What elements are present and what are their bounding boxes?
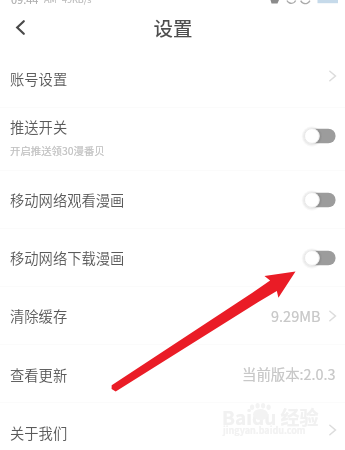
button[interactable]: 推送开关: [0, 108, 345, 171]
staticText: AM: [44, 0, 57, 6]
staticText: 查看更新: [10, 364, 68, 385]
staticText: 当前版本:2.0.3: [242, 363, 336, 384]
staticText: 移动网络下载漫画: [10, 247, 125, 268]
button[interactable]: 查看更新: [0, 345, 345, 403]
staticText: 账号设置: [10, 68, 68, 89]
staticText: 9.29MB: [271, 305, 321, 326]
staticText: 清除缓存: [10, 305, 68, 326]
staticText: 移动网络观看漫画: [10, 189, 125, 210]
button[interactable]: 移动网络下载漫画: [0, 229, 345, 287]
button[interactable]: Back: [0, 9, 40, 46]
button[interactable]: Toggle: [304, 190, 336, 210]
button[interactable]: 账号设置: [0, 50, 345, 108]
staticText: jingyan.baidu.com: [223, 424, 306, 437]
button[interactable]: 移动网络观看漫画: [0, 171, 345, 229]
button[interactable]: 关于我们: [0, 403, 345, 450]
button[interactable]: 清除缓存: [0, 287, 345, 345]
staticText: 49KB/s: [62, 0, 92, 6]
button[interactable]: Toggle: [304, 248, 336, 268]
staticText: 设置: [153, 13, 193, 41]
staticText: 09:44: [11, 0, 39, 7]
button[interactable]: Toggle: [304, 126, 336, 146]
staticText: Baidu 经验: [222, 403, 319, 431]
staticText: 推送开关: [10, 116, 68, 137]
staticText: 开启推送领30漫番贝: [10, 143, 105, 158]
staticText: 关于我们: [10, 422, 68, 443]
